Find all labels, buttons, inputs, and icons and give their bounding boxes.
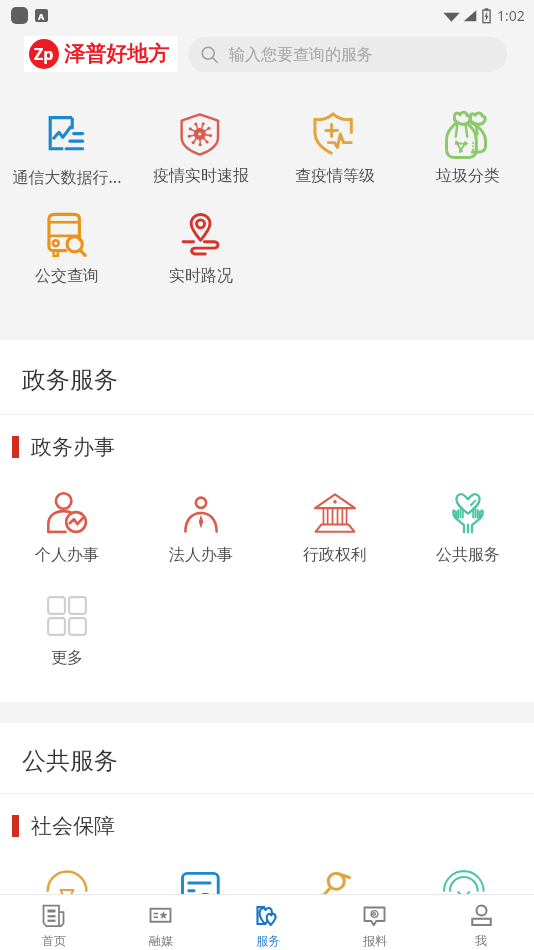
button[interactable]: 实时路况 [134, 213, 268, 286]
staticText: 泽普好地方 [64, 41, 169, 67]
button[interactable]: 社会保障 [0, 794, 534, 858]
staticText: 更多 [7, 648, 127, 668]
staticText: 公交查询 [7, 266, 127, 286]
staticText: 查疫情等级 [275, 166, 395, 186]
staticText: 养老保险 [7, 922, 127, 942]
button[interactable]: 我 [428, 895, 534, 950]
staticText: 公积金 [408, 922, 528, 942]
staticText: 公共服务 [22, 746, 118, 776]
staticText: 个人办事 [7, 545, 127, 565]
staticText: 实时路况 [141, 266, 261, 286]
staticText: 垃圾分类 [408, 166, 528, 186]
staticText: 法人办事 [141, 545, 261, 565]
staticText: 疫情实时速报 [141, 166, 261, 186]
button[interactable]: 社保卡 [134, 869, 268, 942]
button[interactable]: 个人办事 [0, 492, 134, 565]
staticText: 首页 [42, 933, 66, 948]
staticText: 就业创业 [275, 922, 395, 942]
staticText: 我 [475, 933, 487, 948]
button[interactable]: 就业创业 [268, 869, 402, 942]
staticText: 公共服务 [408, 545, 528, 565]
button[interactable]: 疫情实时速报 [134, 113, 268, 186]
staticText: 通信大数据行... [7, 166, 127, 188]
button[interactable]: 报料 [321, 895, 428, 950]
button[interactable]: 通信大数据行... [0, 113, 134, 188]
button[interactable]: 公积金 [402, 869, 534, 942]
button[interactable]: Zp [24, 36, 177, 72]
button[interactable]: 更多 [0, 595, 134, 668]
button[interactable]: 首页 [0, 895, 107, 950]
button[interactable]: 融媒 [107, 895, 214, 950]
staticText: 1:02 [497, 6, 525, 25]
button[interactable]: 行政权利 [268, 492, 402, 565]
staticText: 社会保障 [31, 813, 115, 839]
staticText: 政务办事 [31, 434, 115, 460]
button[interactable]: 查疫情等级 [268, 113, 402, 186]
staticText: A [38, 10, 45, 22]
button[interactable]: 养老保险 [0, 869, 134, 942]
staticText: 政务服务 [22, 365, 118, 395]
button[interactable]: 政务办事 [0, 415, 534, 479]
button[interactable]: 服务 [214, 895, 321, 950]
button[interactable]: 法人办事 [134, 492, 268, 565]
button[interactable]: 垃圾分类 [402, 113, 534, 186]
button[interactable]: 公共服务 [402, 492, 534, 565]
staticText: 融媒 [149, 933, 173, 948]
button[interactable]: 公交查询 [0, 213, 134, 286]
staticText: Zp [34, 43, 54, 65]
staticText: 输入您要查询的服务 [229, 45, 373, 65]
button[interactable]: 输入您要查询的服务 [188, 37, 507, 72]
staticText: 服务 [256, 933, 280, 948]
staticText: 社保卡 [141, 922, 261, 942]
staticText: 行政权利 [275, 545, 395, 565]
staticText: 报料 [363, 933, 387, 948]
